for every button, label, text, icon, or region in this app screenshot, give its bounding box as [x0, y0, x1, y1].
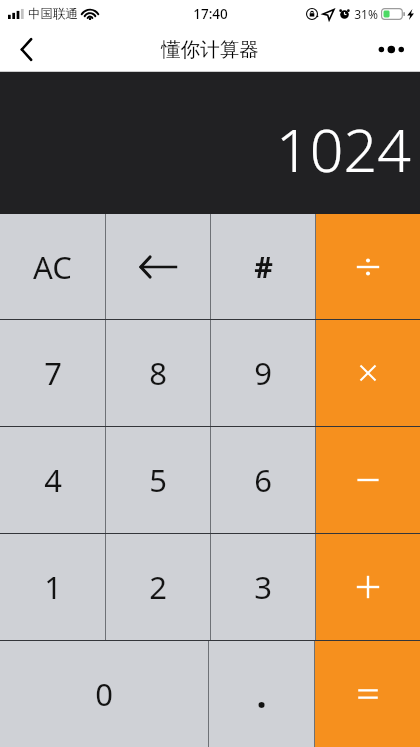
- staticText: 17:40: [193, 5, 228, 23]
- button[interactable]: 7: [0, 320, 105, 426]
- button[interactable]: 3: [211, 534, 315, 640]
- button[interactable]: 5: [106, 427, 210, 533]
- staticText: 3: [254, 566, 272, 608]
- staticText: 9: [254, 352, 272, 394]
- staticText: .: [256, 670, 267, 719]
- staticText: 31%: [354, 6, 378, 22]
- staticText: 2: [149, 566, 167, 608]
- button[interactable]: Back: [0, 28, 52, 71]
- staticText: 7: [44, 352, 62, 394]
- staticText: #: [254, 247, 273, 286]
- button[interactable]: 6: [211, 427, 315, 533]
- button[interactable]: 4: [0, 427, 105, 533]
- button[interactable]: Backspace: [106, 214, 210, 319]
- button[interactable]: Minus: [316, 427, 420, 533]
- button[interactable]: 8: [106, 320, 210, 426]
- button[interactable]: Multiply: [316, 320, 420, 426]
- button[interactable]: Divide: [316, 214, 420, 319]
- staticText: 4: [44, 459, 62, 501]
- staticText: 5: [149, 459, 167, 501]
- button[interactable]: .: [209, 641, 314, 747]
- staticText: 8: [149, 352, 167, 394]
- button[interactable]: Equals: [315, 641, 420, 747]
- button[interactable]: 0: [0, 641, 208, 747]
- staticText: 懂你计算器: [161, 37, 259, 62]
- staticText: 0: [95, 673, 113, 715]
- button[interactable]: 9: [211, 320, 315, 426]
- staticText: 1024: [276, 109, 411, 189]
- button[interactable]: 1: [0, 534, 105, 640]
- button[interactable]: Plus: [316, 534, 420, 640]
- staticText: 1: [44, 566, 62, 608]
- button[interactable]: #: [211, 214, 315, 319]
- button[interactable]: More options: [362, 28, 420, 71]
- button[interactable]: AC: [0, 214, 105, 319]
- button[interactable]: 2: [106, 534, 210, 640]
- staticText: 6: [254, 459, 272, 501]
- staticText: AC: [33, 246, 72, 288]
- staticText: 中国联通: [28, 6, 78, 22]
